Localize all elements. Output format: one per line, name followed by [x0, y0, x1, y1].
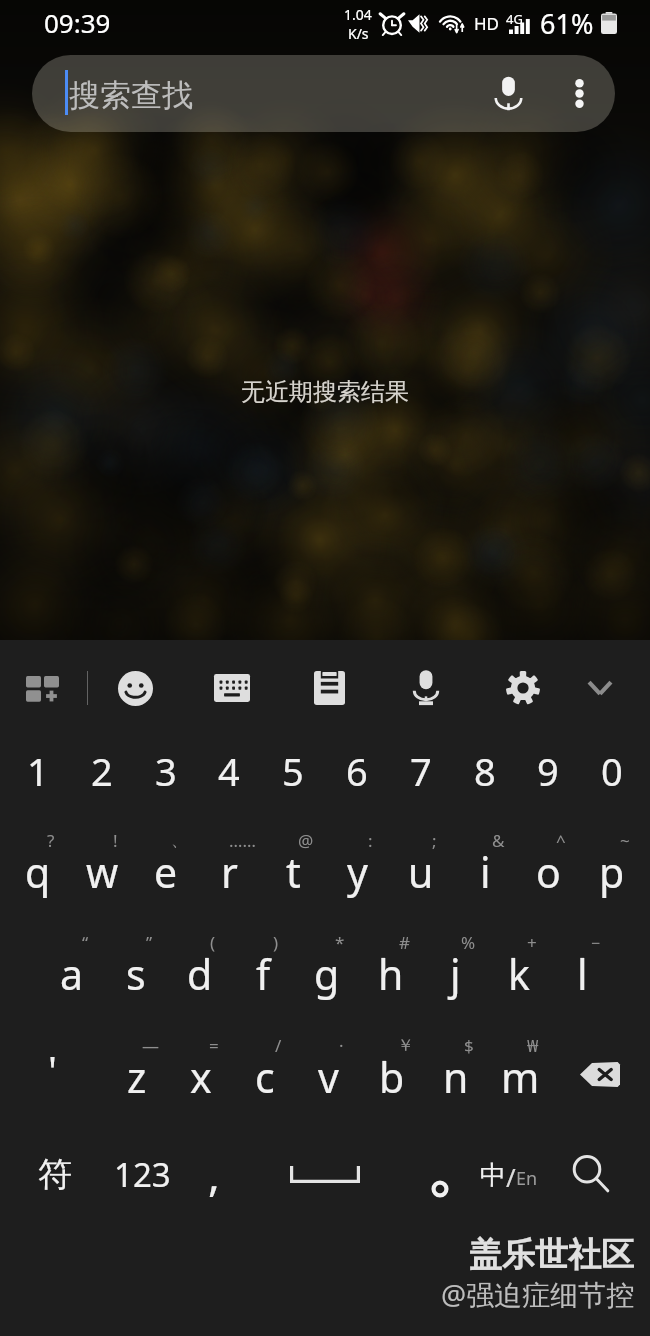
button[interactable]: Settings	[479, 652, 567, 724]
button[interactable]: m	[488, 1027, 552, 1127]
staticText: @强迫症细节控	[441, 1275, 635, 1313]
staticText: r	[221, 844, 238, 900]
button[interactable]: e	[134, 822, 198, 922]
button[interactable]: Full stop	[398, 1134, 478, 1214]
staticText: ￥	[397, 1035, 414, 1056]
button[interactable]: 5	[261, 721, 325, 821]
button[interactable]: 4	[197, 721, 261, 821]
button[interactable]: Backspace	[560, 1034, 640, 1114]
button[interactable]: 搜索查找	[32, 55, 615, 132]
button[interactable]: g	[295, 924, 359, 1024]
staticText: g	[314, 946, 340, 1002]
button[interactable]: 0	[580, 721, 644, 821]
button[interactable]: 中	[464, 1134, 554, 1214]
staticText: 0	[601, 745, 623, 797]
button[interactable]: Space	[265, 1134, 385, 1214]
staticText: 盖乐世社区	[469, 1234, 634, 1276]
staticText: *	[335, 931, 345, 954]
staticText: 符	[38, 1153, 72, 1196]
staticText: s	[126, 946, 146, 1002]
staticText: e	[154, 844, 178, 900]
button[interactable]: n	[424, 1027, 488, 1127]
button[interactable]: 2	[70, 721, 134, 821]
staticText: m	[501, 1049, 540, 1105]
button[interactable]: k	[487, 924, 551, 1024]
button[interactable]: 7	[389, 721, 453, 821]
button[interactable]: Voice search	[472, 55, 544, 132]
staticText: 9	[537, 745, 559, 797]
button[interactable]: 3	[134, 721, 198, 821]
staticText: ,	[208, 1144, 220, 1204]
staticText: d	[187, 946, 213, 1002]
button[interactable]: ,	[174, 1134, 254, 1214]
button[interactable]: 9	[516, 721, 580, 821]
button[interactable]: 6	[325, 721, 389, 821]
button[interactable]: b	[360, 1027, 424, 1127]
button[interactable]: Emoji	[91, 652, 179, 724]
staticText: o	[536, 844, 561, 900]
staticText: x	[190, 1049, 212, 1105]
button[interactable]: Keyboard layout	[188, 652, 276, 724]
button[interactable]: a	[40, 924, 104, 1024]
button[interactable]: Search	[551, 1134, 631, 1214]
button[interactable]: Clipboard	[285, 652, 373, 724]
staticText: —	[142, 1034, 159, 1057]
staticText: &	[492, 829, 505, 852]
button[interactable]: q	[6, 822, 70, 922]
button[interactable]: v	[296, 1027, 360, 1127]
staticText: j	[450, 946, 461, 1002]
button[interactable]: 123	[102, 1134, 182, 1214]
staticText: w	[86, 844, 119, 900]
button[interactable]: r	[197, 822, 261, 922]
button[interactable]: s	[104, 924, 168, 1024]
button[interactable]: x	[169, 1027, 233, 1127]
staticText: 123	[114, 1152, 171, 1197]
staticText: (	[210, 931, 216, 954]
button[interactable]: p	[580, 822, 644, 922]
staticText: i	[480, 844, 491, 900]
staticText: q	[25, 844, 51, 900]
staticText: %	[461, 931, 476, 954]
button[interactable]: f	[231, 924, 295, 1024]
staticText: 搜索查找	[69, 76, 193, 115]
staticText: 6	[346, 745, 368, 797]
button[interactable]: More options	[544, 55, 614, 132]
staticText: 8	[474, 745, 496, 797]
button[interactable]: 符	[15, 1134, 95, 1214]
staticText: ?	[47, 829, 55, 852]
staticText: ;	[432, 829, 437, 852]
staticText: /	[275, 1034, 282, 1057]
staticText: +	[527, 931, 537, 954]
button[interactable]: c	[233, 1027, 297, 1127]
staticText: @	[298, 829, 314, 852]
button[interactable]: y	[325, 822, 389, 922]
button[interactable]: 1	[6, 721, 70, 821]
staticText: ~	[620, 829, 630, 852]
button[interactable]: l	[550, 924, 614, 1024]
button[interactable]: u	[389, 822, 453, 922]
button[interactable]: j	[423, 924, 487, 1024]
staticText: 09:39	[44, 5, 111, 40]
button[interactable]: 8	[453, 721, 517, 821]
staticText: z	[127, 1049, 147, 1105]
staticText: u	[408, 844, 434, 900]
staticText: 7	[410, 745, 432, 797]
button[interactable]: w	[70, 822, 134, 922]
staticText: c	[255, 1049, 275, 1105]
staticText: ”	[146, 931, 153, 954]
staticText: !	[113, 829, 118, 852]
button[interactable]: Apps	[0, 652, 86, 724]
button[interactable]: o	[516, 822, 580, 922]
button[interactable]: '	[12, 1030, 92, 1110]
button[interactable]: Voice input	[382, 652, 470, 724]
button[interactable]: h	[359, 924, 423, 1024]
button[interactable]: z	[105, 1027, 169, 1127]
button[interactable]: Hide keyboard	[556, 652, 644, 724]
staticText: 2	[91, 745, 113, 797]
staticText: )	[273, 931, 279, 954]
button[interactable]: t	[261, 822, 325, 922]
button[interactable]: i	[453, 822, 517, 922]
button[interactable]: d	[168, 924, 232, 1024]
staticText: $	[464, 1034, 474, 1057]
staticText: En	[516, 1166, 538, 1191]
